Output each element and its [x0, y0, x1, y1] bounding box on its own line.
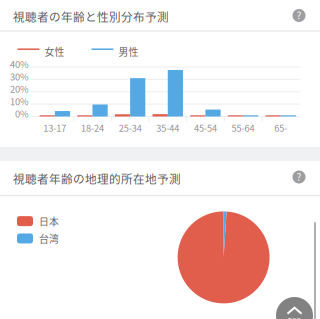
staticText: 女性	[44, 44, 64, 58]
staticText: 30%	[10, 70, 29, 83]
staticText: 日本	[39, 214, 59, 228]
staticText: 20%	[10, 82, 29, 95]
staticText: ?	[296, 8, 301, 22]
staticText: 25-34	[119, 121, 142, 134]
staticText: 65-	[274, 121, 287, 134]
button[interactable]: Help	[288, 4, 310, 26]
staticText: 男性	[118, 44, 138, 58]
staticText: 0%	[15, 107, 29, 120]
button[interactable]: Back to top	[276, 297, 313, 319]
staticText: 10%	[10, 94, 29, 108]
staticText: 45-54	[194, 121, 217, 134]
button[interactable]: Help	[288, 166, 310, 188]
staticText: 35-44	[156, 121, 179, 134]
staticText: 視聴者の年齢と性別分布予測	[13, 8, 169, 25]
staticText: 40%	[10, 57, 29, 71]
staticText: ?	[296, 169, 301, 184]
staticText: 視聴者年齢の地理的所在地予測	[13, 170, 181, 187]
staticText: TOP	[287, 316, 301, 319]
staticText: 台湾	[39, 231, 59, 246]
staticText: 55-64	[232, 121, 255, 134]
staticText: 13-17	[43, 121, 66, 134]
staticText: 18-24	[81, 121, 104, 134]
